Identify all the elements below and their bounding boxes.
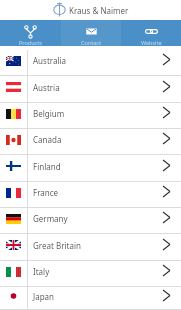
button[interactable]: Contact bbox=[61, 20, 121, 46]
button[interactable]: Products bbox=[0, 20, 61, 46]
staticText: Australia bbox=[33, 55, 163, 66]
button[interactable]: Website bbox=[121, 20, 181, 46]
button[interactable]: Great Britain bbox=[0, 234, 181, 260]
button[interactable]: Canada bbox=[0, 129, 181, 154]
staticText: Products bbox=[19, 39, 42, 46]
button[interactable]: Belgium bbox=[0, 103, 181, 128]
button[interactable]: Italy bbox=[0, 261, 181, 286]
staticText: Website bbox=[141, 39, 162, 46]
staticText: Canada bbox=[33, 134, 163, 145]
button[interactable]: France bbox=[0, 182, 181, 207]
staticText: Italy bbox=[33, 266, 163, 277]
staticText: Germany bbox=[33, 213, 163, 224]
staticText: Finland bbox=[33, 161, 163, 172]
button[interactable]: Germany bbox=[0, 208, 181, 233]
staticText: Belgium bbox=[33, 108, 163, 119]
staticText: France bbox=[33, 187, 163, 198]
staticText: Great Britain bbox=[33, 240, 163, 251]
staticText: Kraus & Naimer bbox=[69, 5, 129, 16]
button[interactable]: Austria bbox=[0, 76, 181, 102]
button[interactable]: Australia bbox=[0, 50, 181, 75]
staticText: Austria bbox=[33, 82, 163, 93]
staticText: Japan bbox=[33, 291, 163, 302]
button[interactable]: Finland bbox=[0, 155, 181, 181]
button[interactable]: Japan bbox=[0, 287, 181, 309]
staticText: Contact bbox=[81, 39, 101, 46]
